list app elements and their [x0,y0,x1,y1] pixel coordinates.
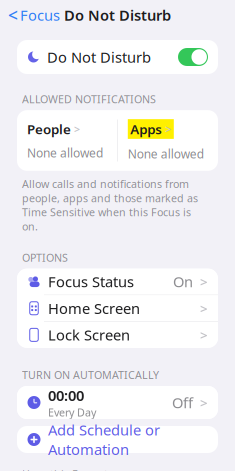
staticText: > [74,122,80,136]
button[interactable]: Do Not Disturb [17,40,218,74]
staticText: None allowed [128,146,204,162]
staticText: > [200,273,208,290]
staticText: Every Day [48,405,96,419]
staticText: Allow calls and notifications from peopl… [22,177,198,233]
staticText: > [200,326,208,344]
staticText: > [200,299,208,317]
staticText: Apps [130,120,162,138]
staticText: Do Not Disturb [47,47,151,67]
button[interactable]: People [17,111,117,170]
staticText: People [27,120,71,138]
staticText: ALLOWED NOTIFICATIONS [22,92,156,106]
staticText: Lock Screen [48,325,130,345]
staticText: On [173,272,193,291]
button[interactable]: Apps [118,110,218,171]
button[interactable]: 00:00 [17,386,218,419]
staticText: Focus Status [48,272,134,291]
staticText: TURN ON AUTOMATICALLY [22,368,159,382]
staticText: < [8,3,18,26]
button[interactable]: Add Schedule or Automation [17,426,218,453]
button[interactable]: Home Screen [17,295,218,321]
staticText: Off [172,393,193,412]
staticText: Do Not Disturb [64,5,171,25]
staticText: Add Schedule or Automation [48,420,160,459]
staticText: Home Screen [48,298,140,318]
staticText: Focus [20,5,60,25]
staticText: 00:00 [48,386,84,405]
staticText: > [165,122,171,136]
button[interactable]: < [0,0,68,30]
staticText: > [200,394,208,411]
staticText: None allowed [27,145,103,161]
staticText: OPTIONS [22,250,68,265]
button[interactable]: Focus Status [17,269,218,295]
staticText: Have this Focus turn on automatically at… [22,467,187,471]
button[interactable]: Lock Screen [17,322,218,348]
